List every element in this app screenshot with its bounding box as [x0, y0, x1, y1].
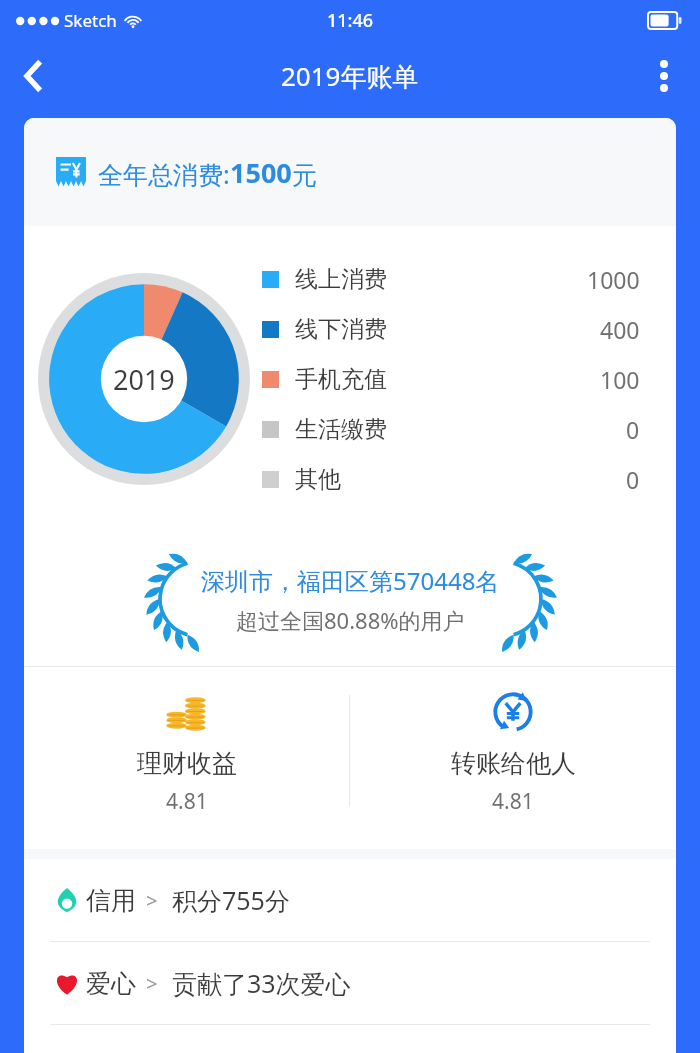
button[interactable]: 理财收益	[24, 667, 349, 835]
staticText: Sketch	[64, 9, 117, 32]
staticText: 信用	[86, 885, 136, 916]
staticText: 深圳市，福田区第570448名	[201, 564, 500, 597]
staticText: 贡献了33次爱心	[172, 966, 351, 1000]
staticText: 4.81	[166, 787, 208, 816]
staticText: 0	[626, 414, 640, 445]
staticText: >	[146, 887, 158, 914]
staticText: 100	[600, 364, 640, 395]
staticText: 手机充值	[295, 365, 387, 394]
staticText: 1000	[587, 264, 640, 295]
button[interactable]: 线上消费	[262, 254, 640, 304]
staticText: 线上消费	[295, 265, 387, 294]
staticText: >	[146, 970, 158, 997]
staticText: 超过全国80.88%的用户	[236, 605, 465, 635]
staticText: 2019年账单	[281, 58, 419, 94]
staticText: 1500	[230, 154, 292, 191]
staticText: 理财收益	[137, 748, 237, 779]
button[interactable]: 生活缴费	[262, 404, 640, 454]
button[interactable]: 线下消费	[262, 304, 640, 354]
button[interactable]: 手机充值	[262, 354, 640, 404]
button[interactable]: 爱心	[24, 942, 676, 1024]
staticText: 其他	[295, 465, 341, 494]
staticText: 生活缴费	[295, 415, 387, 444]
staticText: 400	[600, 314, 640, 345]
staticText: 转账给他人	[451, 748, 576, 779]
button[interactable]: 其他	[262, 454, 640, 504]
staticText: 线下消费	[295, 315, 387, 344]
button[interactable]: More options	[640, 52, 688, 100]
staticText: 2019	[113, 361, 175, 398]
button[interactable]: 信用	[24, 859, 676, 941]
staticText: 元	[292, 160, 317, 191]
staticText: 11:46	[327, 8, 374, 33]
staticText: 全年总消费:	[98, 157, 230, 191]
staticText: 0	[626, 464, 640, 495]
staticText: 4.81	[492, 787, 534, 816]
staticText: 积分755分	[172, 883, 290, 917]
staticText: 爱心	[86, 968, 136, 999]
button[interactable]: Back	[8, 50, 60, 102]
button[interactable]: 转账给他人	[350, 667, 676, 835]
